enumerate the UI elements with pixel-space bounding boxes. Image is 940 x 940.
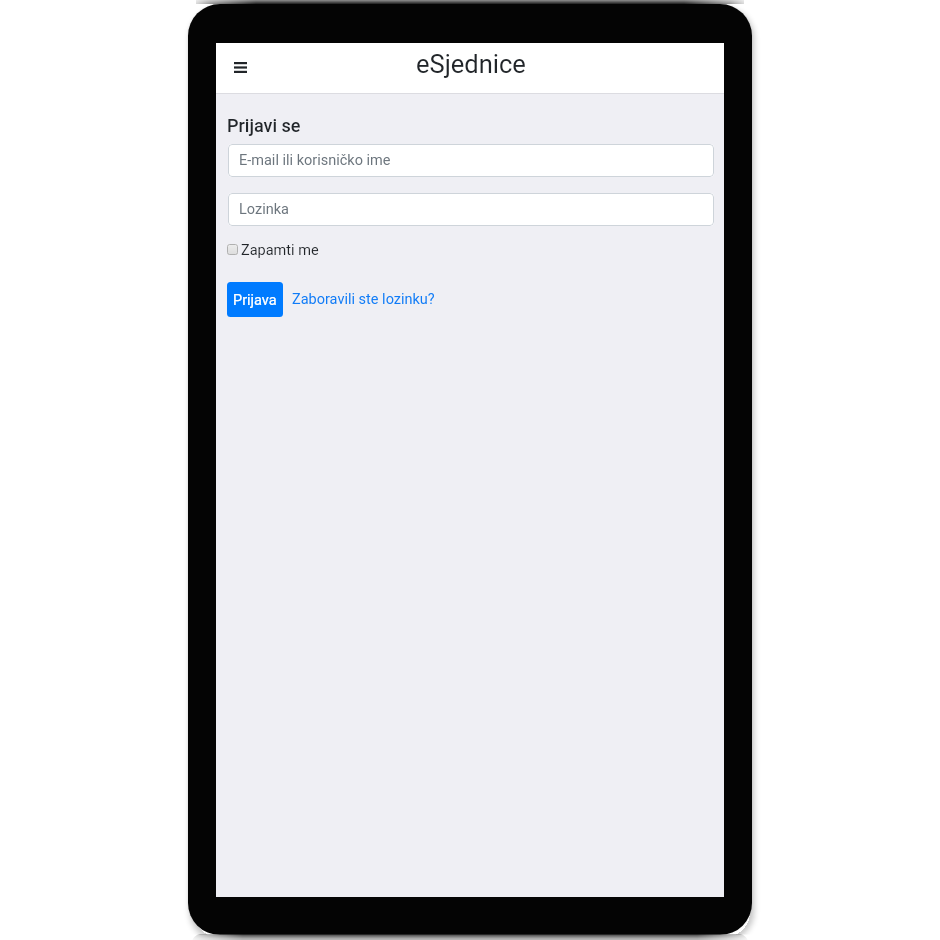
staticText: Zapamti me <box>241 242 319 259</box>
staticText: Prijavi se <box>227 115 301 136</box>
button[interactable]: Zapamti me <box>226 240 331 261</box>
staticText: Lozinka <box>239 201 289 218</box>
staticText: eSjednice <box>416 49 526 79</box>
button[interactable]: Prijava <box>227 282 283 317</box>
button[interactable]: Open navigation menu <box>226 48 254 87</box>
staticText: E-mail ili korisničko ime <box>239 152 391 169</box>
button[interactable]: Zaboravili ste lozinku? <box>292 289 435 310</box>
button[interactable]: Lozinka <box>228 193 714 226</box>
staticText: Prijava <box>233 292 277 309</box>
button[interactable]: E-mail ili korisničko ime <box>228 144 714 177</box>
staticText: Zaboravili ste lozinku? <box>292 291 435 308</box>
